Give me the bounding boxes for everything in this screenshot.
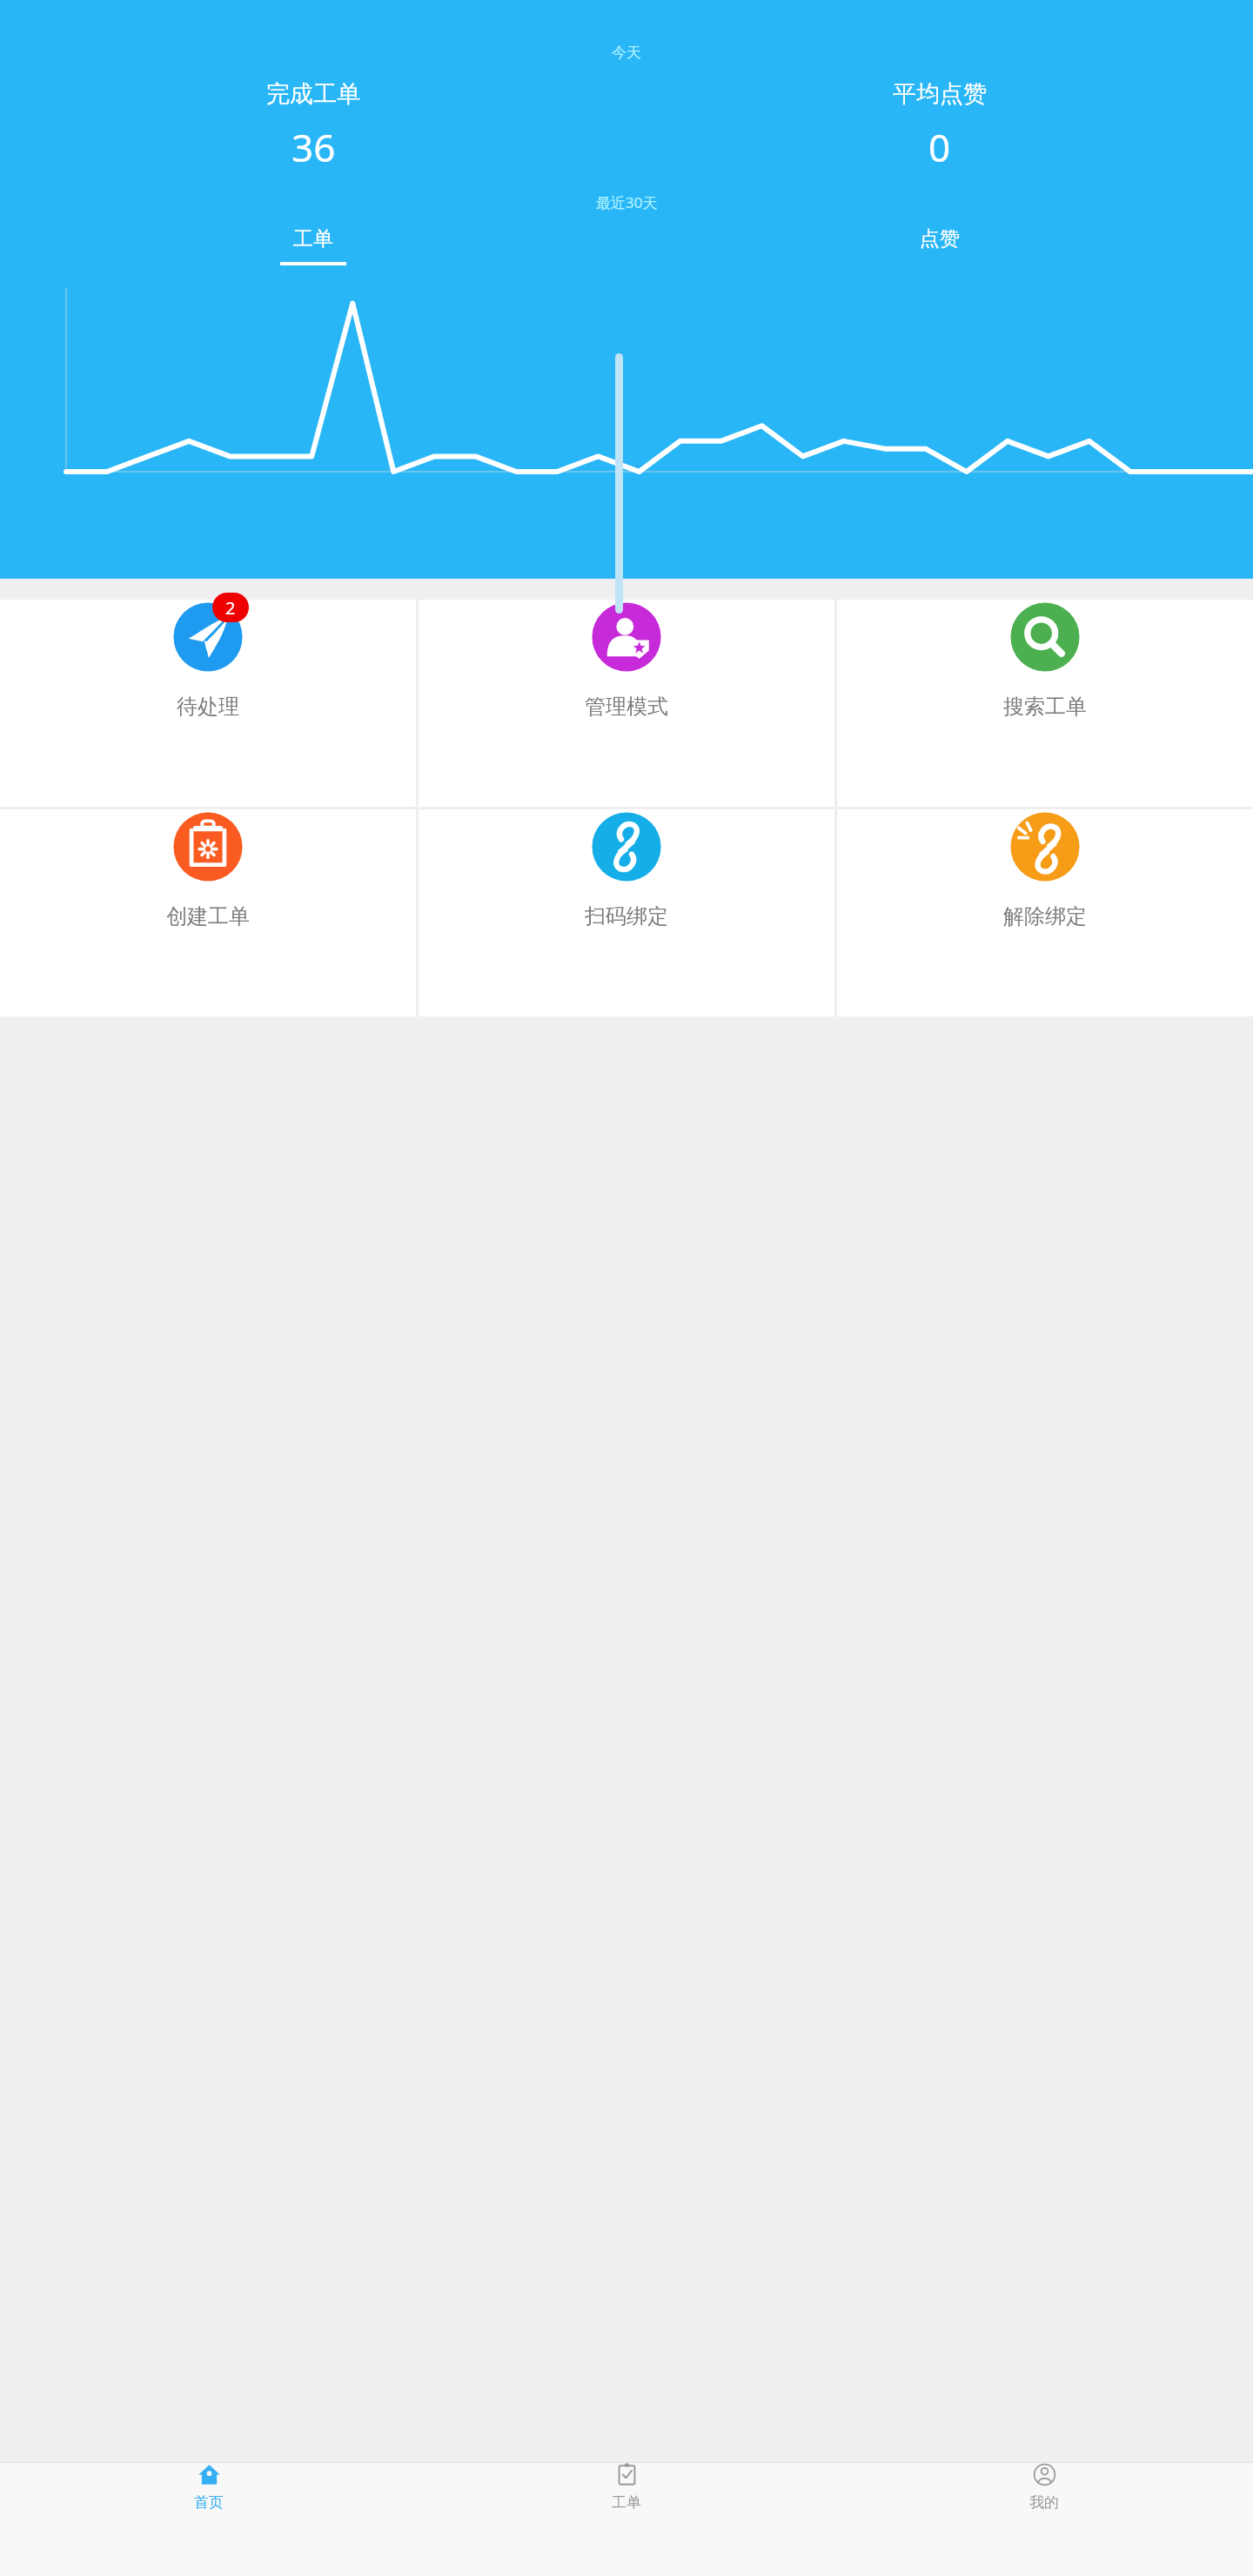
button[interactable]: 点赞: [626, 226, 1253, 265]
button[interactable]: 扫码绑定: [419, 809, 834, 929]
button[interactable]: 完成工单: [0, 79, 626, 173]
staticText: 最近30天: [596, 192, 658, 212]
button[interactable]: 搜索工单: [837, 600, 1253, 720]
staticText: 今天: [612, 44, 641, 62]
staticText: 创建工单: [166, 903, 250, 929]
button[interactable]: 我的: [835, 2463, 1253, 2512]
staticText: 首页: [194, 2493, 224, 2512]
button[interactable]: 工单: [418, 2463, 835, 2512]
button[interactable]: 2: [0, 600, 416, 720]
staticText: 管理模式: [585, 694, 668, 720]
staticText: 扫码绑定: [585, 903, 668, 929]
staticText: 36: [291, 121, 336, 173]
staticText: 点赞: [920, 226, 960, 252]
staticText: 平均点赞: [893, 79, 987, 109]
button[interactable]: 解除绑定: [837, 809, 1253, 929]
button[interactable]: 管理模式: [419, 600, 834, 720]
staticText: 我的: [1029, 2493, 1059, 2512]
staticText: 待处理: [177, 694, 239, 720]
button[interactable]: 首页: [0, 2463, 418, 2512]
staticText: 0: [928, 121, 951, 173]
button[interactable]: 创建工单: [0, 809, 416, 929]
staticText: 完成工单: [266, 79, 360, 109]
staticText: 工单: [293, 226, 333, 252]
staticText: 搜索工单: [1003, 694, 1087, 720]
button[interactable]: 工单: [0, 226, 626, 265]
staticText: 2: [225, 596, 236, 620]
staticText: 工单: [612, 2493, 641, 2512]
button[interactable]: 平均点赞: [626, 79, 1253, 173]
staticText: 解除绑定: [1003, 903, 1087, 929]
